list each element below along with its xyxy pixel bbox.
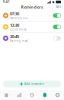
staticText: 9:41: [3, 0, 10, 4]
button[interactable]: Clock: [26, 90, 38, 100]
staticText: Add reminder: [24, 82, 44, 86]
button[interactable]: 07:30: [0, 10, 64, 21]
button[interactable]: Home: [0, 90, 13, 100]
staticText: Lunch break: [10, 28, 26, 31]
staticText: 20:45: [10, 34, 19, 39]
staticText: Edit: [56, 5, 61, 9]
button[interactable]: Settings: [51, 90, 64, 100]
button[interactable]: 12:30: [0, 21, 64, 32]
button[interactable]: Add reminder: [3, 80, 61, 87]
staticText: Reminders: [21, 4, 43, 10]
staticText: 12:30: [10, 22, 19, 28]
button[interactable]: 20:45: [0, 33, 64, 44]
staticText: Morning run: [10, 16, 28, 20]
staticText: Evening read: [10, 39, 28, 43]
button[interactable]: Reminders: [38, 90, 51, 100]
button[interactable]: Stats: [13, 90, 26, 100]
button[interactable]: Edit: [55, 4, 62, 10]
staticText: 07:30: [10, 11, 19, 16]
